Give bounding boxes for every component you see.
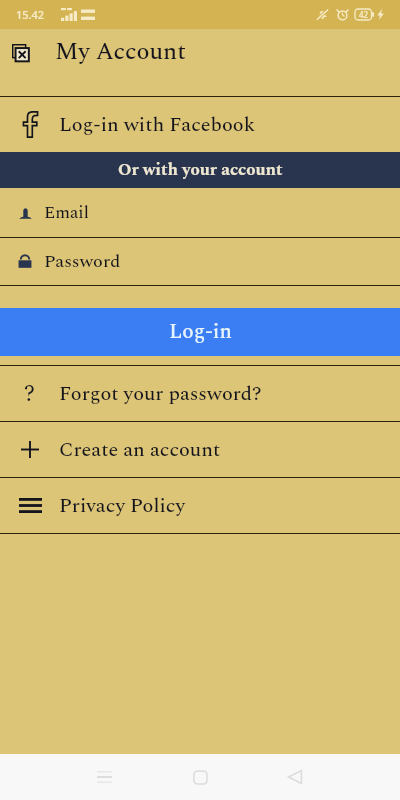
- button[interactable]: ?: [0, 366, 400, 421]
- button[interactable]: Back: [256, 754, 333, 800]
- button[interactable]: Password: [0, 238, 400, 285]
- staticText: Or with your account: [118, 157, 283, 183]
- button[interactable]: Log-in with Facebook: [0, 97, 400, 152]
- staticText: 15.42: [16, 7, 45, 22]
- button[interactable]: Close: [0, 32, 41, 73]
- button[interactable]: Log-in: [0, 308, 400, 356]
- button[interactable]: Home: [162, 754, 239, 800]
- button[interactable]: Create an account: [0, 422, 400, 477]
- button[interactable]: Privacy Policy: [0, 478, 400, 533]
- staticText: Password: [44, 248, 121, 275]
- staticText: Log-in: [169, 316, 232, 348]
- staticText: Create an account: [59, 435, 221, 465]
- staticText: Email: [44, 200, 89, 226]
- staticText: Forgot your password?: [59, 379, 262, 409]
- button[interactable]: Email: [0, 188, 400, 237]
- staticText: Privacy Policy: [59, 491, 186, 521]
- staticText: ?: [24, 377, 36, 412]
- staticText: Log-in with Facebook: [59, 110, 256, 140]
- staticText: My Account: [55, 34, 186, 71]
- staticText: 42: [359, 9, 369, 20]
